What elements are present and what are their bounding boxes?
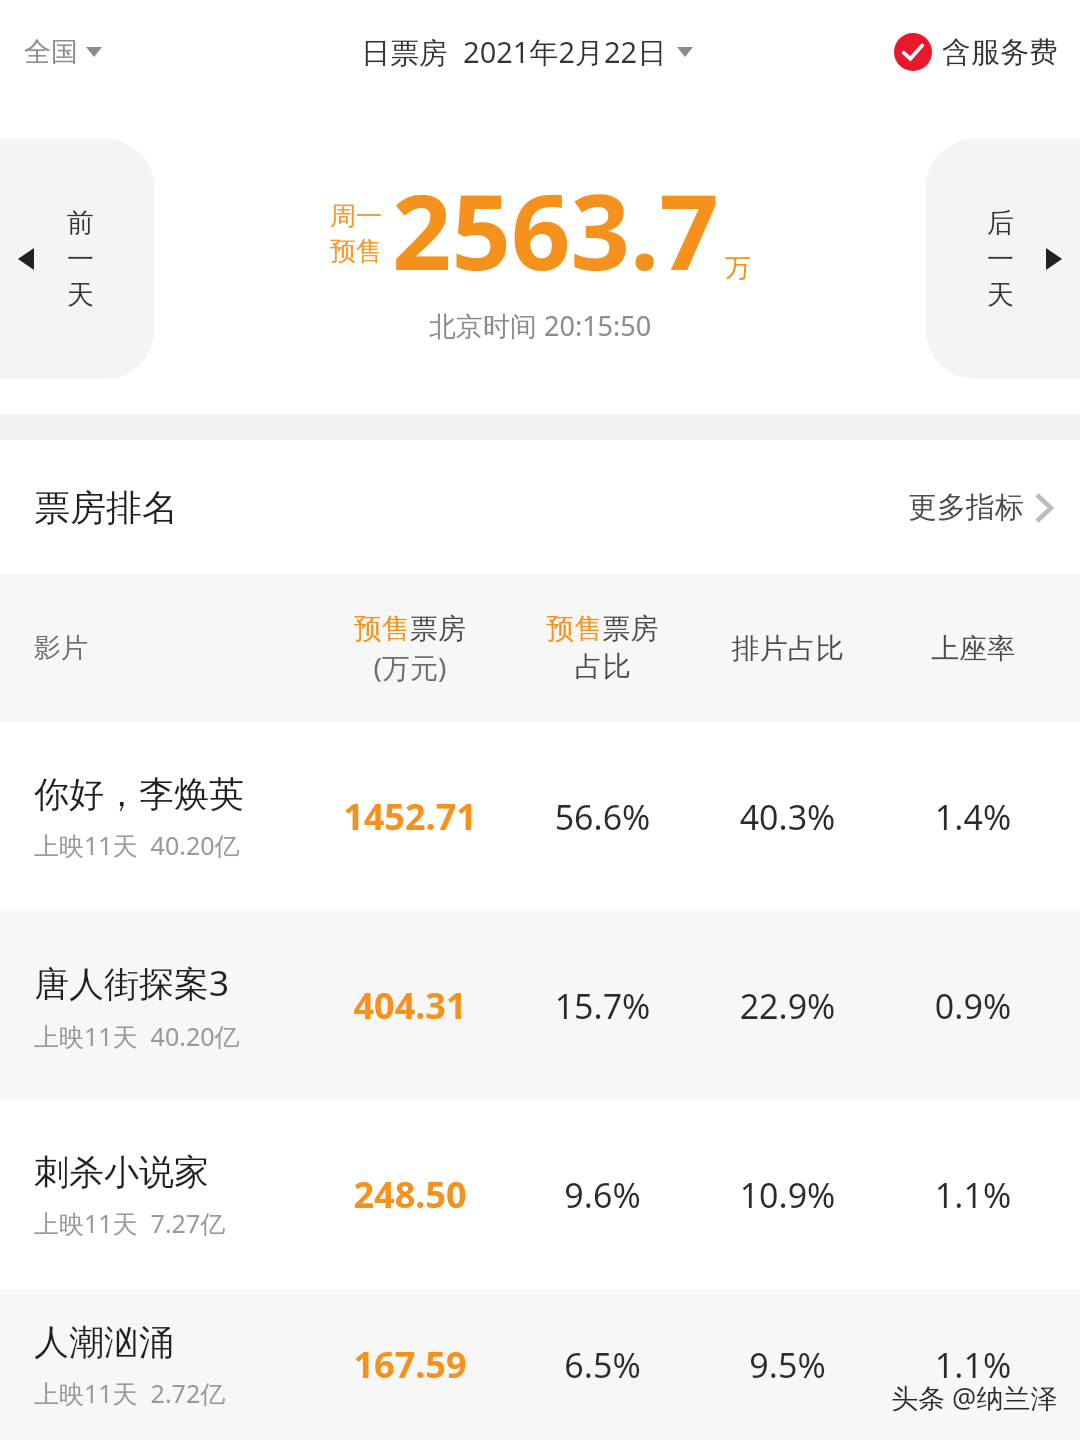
staticText: 票房排名 [34, 485, 178, 530]
staticText: 1.1% [880, 1172, 1066, 1218]
staticText: 刺杀小说家 [34, 1150, 209, 1194]
staticText: 后 一 天 [987, 206, 1014, 312]
staticText: 日票房 2021年2月22日 [361, 32, 667, 72]
staticText: 167.59 [310, 1340, 510, 1389]
button[interactable]: 刺杀小说家 [0, 1100, 1080, 1289]
button[interactable]: 前一天 [0, 139, 154, 379]
button[interactable]: 唐人街探案3 [0, 911, 1080, 1100]
staticText: 头条 @纳兰泽 [891, 1379, 1058, 1416]
staticText: 预售票房 (万元) [310, 611, 510, 686]
staticText: 6.5% [510, 1342, 695, 1388]
button[interactable]: 日票房 2021年2月22日 [361, 32, 693, 72]
button[interactable]: 全国 [20, 29, 106, 75]
staticText: 上座率 [880, 631, 1066, 666]
staticText: 248.50 [310, 1170, 510, 1219]
staticText: 0.9% [880, 983, 1066, 1029]
staticText: 影片 [34, 631, 310, 665]
staticText: 北京时间 20:15:50 [429, 307, 652, 344]
staticText: 22.9% [695, 983, 880, 1029]
staticText: 周一 预售 [330, 200, 382, 268]
staticText: 9.6% [510, 1172, 695, 1218]
staticText: 上映11天 40.20亿 [34, 1019, 240, 1053]
staticText: 1.1% [880, 1342, 1066, 1388]
staticText: 预售票房 占比 [510, 611, 695, 685]
button[interactable]: 后一天 [926, 139, 1080, 379]
staticText: 含服务费 [942, 34, 1058, 71]
staticText: 2563.7 [392, 159, 719, 301]
staticText: 上映11天 2.72亿 [34, 1376, 226, 1410]
staticText: 唐人街探案3 [34, 959, 230, 1007]
button[interactable]: 你好，李焕英 [0, 722, 1080, 911]
staticText: 全国 [24, 35, 78, 69]
staticText: 上映11天 7.27亿 [34, 1206, 226, 1240]
button[interactable]: 人潮汹涌 [0, 1289, 1080, 1440]
staticText: 更多指标 [908, 489, 1024, 526]
staticText: 9.5% [695, 1342, 880, 1388]
staticText: 人潮汹涌 [34, 1320, 174, 1364]
staticText: 56.6% [510, 794, 695, 840]
staticText: 40.3% [695, 794, 880, 840]
staticText: 上映11天 40.20亿 [34, 828, 240, 862]
staticText: 10.9% [695, 1172, 880, 1218]
button[interactable]: 含服务费 [894, 33, 1058, 71]
staticText: 15.7% [510, 983, 695, 1029]
staticText: 404.31 [310, 981, 510, 1030]
button[interactable]: 更多指标 [908, 489, 1052, 526]
staticText: 1452.71 [310, 792, 510, 841]
staticText: 1.4% [880, 794, 1066, 840]
staticText: 万 [725, 252, 751, 285]
staticText: 排片占比 [695, 631, 880, 666]
staticText: 你好，李焕英 [34, 772, 244, 816]
staticText: 前 一 天 [67, 206, 94, 312]
